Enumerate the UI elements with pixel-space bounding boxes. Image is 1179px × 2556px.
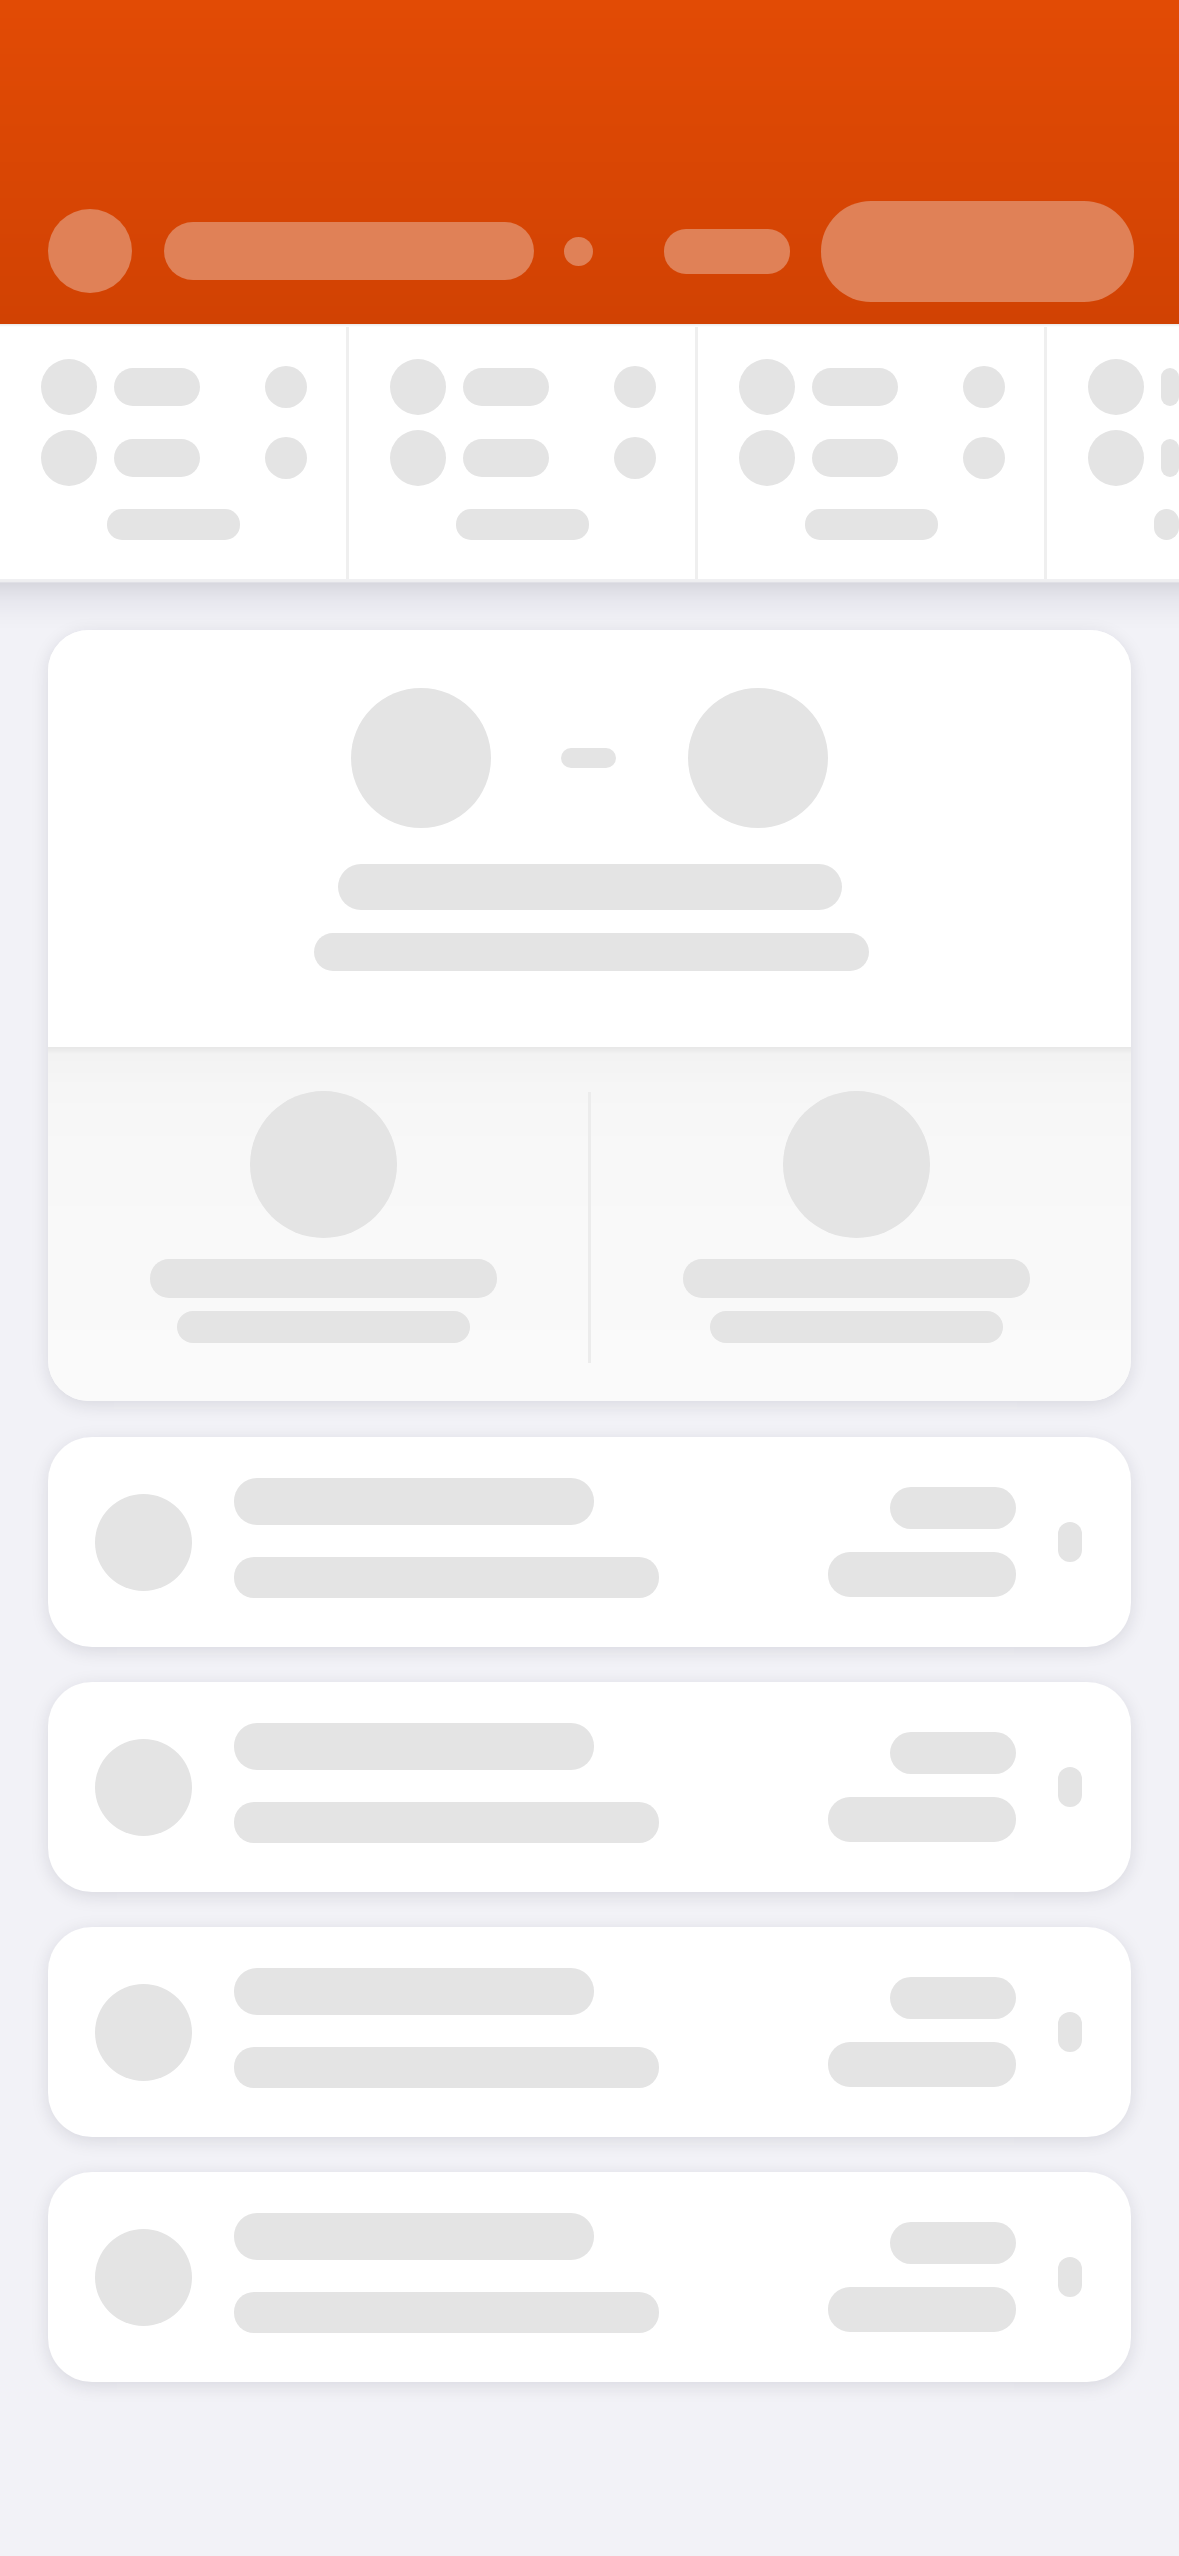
button[interactable] (48, 1437, 1131, 1647)
button[interactable]: Filter (664, 229, 790, 274)
button[interactable]: Account (821, 201, 1134, 302)
button[interactable]: Category shortcut (349, 324, 695, 579)
button[interactable] (591, 1047, 1131, 1401)
button[interactable]: Category shortcut (698, 324, 1044, 579)
button[interactable]: Category shortcut (0, 324, 346, 579)
button[interactable] (48, 1682, 1131, 1892)
button[interactable] (48, 630, 1131, 1401)
button[interactable] (48, 1047, 588, 1401)
button[interactable]: Navigation menu (48, 209, 132, 293)
button[interactable]: Category shortcut (1047, 324, 1179, 579)
button[interactable]: Search (164, 222, 534, 280)
button[interactable] (48, 1927, 1131, 2137)
button[interactable] (48, 2172, 1131, 2382)
